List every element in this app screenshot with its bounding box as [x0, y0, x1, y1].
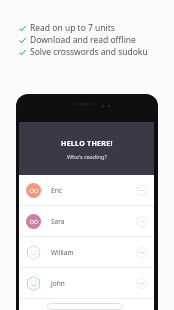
staticText: Eric	[51, 186, 63, 195]
button[interactable]: Sara	[19, 206, 154, 236]
button[interactable]: William	[19, 237, 154, 267]
staticText: Sara	[51, 217, 65, 226]
button[interactable]: More options for Sara	[136, 216, 147, 227]
button[interactable]: More options for William	[136, 247, 147, 258]
button[interactable]: MANAGE PROFILES	[47, 303, 123, 310]
staticText: Download and read offline	[30, 34, 136, 46]
staticText: William	[51, 248, 74, 257]
staticText: Who's reading?	[67, 153, 107, 161]
button[interactable]: John	[19, 268, 154, 298]
button[interactable]: More options for John	[136, 278, 147, 289]
staticText: HELLO THERE!	[61, 139, 113, 149]
button[interactable]: Eric	[19, 175, 154, 205]
staticText: John	[51, 279, 65, 288]
staticText: Solve crosswords and sudoku	[30, 46, 148, 58]
button[interactable]: More options for Eric	[136, 185, 147, 196]
staticText: Read on up to 7 units	[30, 22, 115, 34]
